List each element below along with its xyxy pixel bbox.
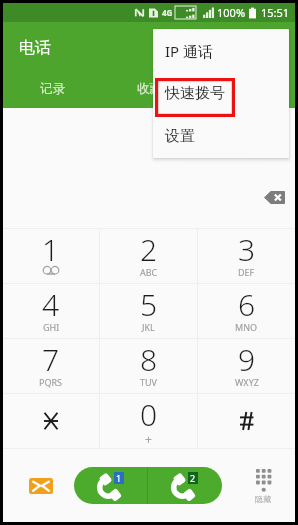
staticText: 4 (42, 284, 60, 325)
button[interactable]: 1 (3, 229, 99, 283)
staticText: 6 (238, 284, 256, 325)
staticText: 记录 (40, 81, 65, 97)
staticText: 0 (140, 394, 158, 435)
staticText: 9 (238, 339, 256, 380)
button[interactable]: 2 (100, 229, 197, 283)
staticText: 8 (140, 339, 158, 380)
button[interactable]: Hide keypad (241, 463, 285, 509)
staticText: 7 (42, 339, 60, 380)
staticText: GHI (43, 321, 60, 333)
staticText: PQRS (39, 376, 63, 388)
button[interactable] (3, 394, 99, 448)
staticText: JKL (142, 321, 155, 333)
staticText: 快速拨号 (165, 84, 225, 103)
staticText: + (145, 431, 152, 447)
staticText: ABC (140, 266, 158, 278)
button[interactable]: 4 (3, 284, 99, 338)
button[interactable]: 记录 (3, 72, 101, 106)
staticText: 100% (217, 5, 246, 20)
staticText: 5 (140, 284, 158, 325)
staticText: 1 (42, 229, 60, 270)
staticText: DEF (238, 266, 255, 278)
button[interactable]: 6 (198, 284, 295, 338)
staticText: 15:51 (261, 5, 290, 20)
staticText: 3 (238, 229, 256, 270)
button[interactable]: Call with SIM 1 (74, 467, 147, 504)
staticText: MNO (235, 321, 258, 333)
button[interactable]: 快速拨号 (153, 72, 289, 115)
staticText: IP 通话 (165, 41, 214, 61)
button[interactable]: 收藏 (101, 72, 198, 106)
button[interactable]: 5 (100, 284, 197, 338)
staticText: 隐藏 (255, 494, 271, 504)
button[interactable]: 7 (3, 339, 99, 393)
button[interactable]: IP 通话 (153, 29, 289, 72)
button[interactable]: 3 (198, 229, 295, 283)
staticText: TUV (140, 376, 157, 388)
button[interactable]: Call with SIM 2 (148, 467, 222, 504)
staticText: 4G (162, 7, 173, 18)
button[interactable]: Send message (16, 461, 66, 511)
button[interactable]: Backspace (259, 186, 289, 208)
button[interactable]: 9 (198, 339, 295, 393)
button[interactable]: 联系人 (198, 72, 295, 106)
button[interactable] (198, 394, 295, 448)
staticText: 2 (190, 472, 196, 484)
staticText: WXYZ (235, 376, 259, 388)
staticText: 1 (116, 472, 122, 484)
staticText: 设置 (165, 127, 195, 146)
button[interactable]: 0 (100, 394, 197, 448)
staticText: 电话 (19, 38, 51, 58)
button[interactable]: 设置 (153, 115, 289, 158)
staticText: 联系人 (228, 81, 266, 97)
button[interactable]: 8 (100, 339, 197, 393)
staticText: 收藏 (137, 81, 162, 97)
staticText: 2 (140, 229, 158, 270)
